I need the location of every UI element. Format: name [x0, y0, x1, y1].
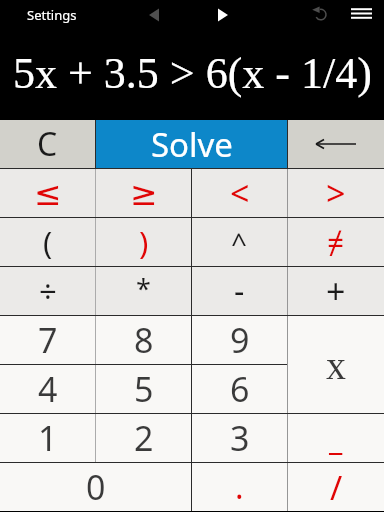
button[interactable]: 2	[96, 414, 191, 462]
button[interactable]: ^	[192, 218, 287, 266]
button[interactable]: 4	[0, 365, 95, 413]
staticText: /	[330, 465, 343, 510]
staticText: 6	[230, 366, 250, 412]
staticText: 1	[38, 415, 58, 461]
button[interactable]: _	[288, 414, 384, 462]
button[interactable]: 3	[192, 414, 287, 462]
button[interactable]: (	[0, 218, 95, 266]
button[interactable]: )	[96, 218, 191, 266]
button[interactable]	[140, 1, 168, 29]
button[interactable]	[288, 120, 384, 168]
button[interactable]: -	[192, 267, 287, 315]
staticText: 8	[134, 317, 154, 363]
staticText: 4	[38, 366, 58, 412]
staticText: (	[43, 221, 53, 263]
staticText: 5x + 3.5 > 6(x - 1/4)	[13, 49, 372, 98]
button[interactable]: 8	[96, 316, 191, 364]
button[interactable]: Settings	[27, 6, 77, 24]
button[interactable]: 6	[192, 365, 287, 413]
button[interactable]: 5	[96, 365, 191, 413]
staticText: ≤	[34, 174, 62, 212]
staticText: ≠	[327, 222, 345, 263]
staticText: -	[234, 269, 245, 313]
staticText: x	[326, 343, 346, 387]
button[interactable]: +	[288, 267, 384, 315]
button[interactable]	[347, 0, 377, 30]
button[interactable]: >	[288, 169, 384, 217]
staticText: )	[139, 221, 149, 263]
staticText: ^	[231, 223, 248, 261]
staticText: .	[235, 465, 244, 509]
staticText: 9	[230, 317, 250, 363]
button[interactable]	[210, 1, 238, 29]
staticText: <	[230, 170, 250, 216]
button[interactable]: .	[192, 463, 287, 511]
staticText: *	[136, 270, 151, 307]
button[interactable]: x	[288, 316, 384, 413]
button[interactable]: *	[96, 267, 191, 315]
staticText: 5	[134, 366, 154, 412]
button[interactable]: ≠	[288, 218, 384, 266]
staticText: 2	[134, 415, 154, 461]
staticText: Solve	[151, 122, 233, 167]
button[interactable]: 0	[0, 463, 191, 511]
button[interactable]: Solve	[96, 120, 287, 168]
staticText: +	[326, 268, 346, 314]
staticText: 3	[230, 415, 250, 461]
staticText: >	[326, 170, 346, 216]
button[interactable]: C	[0, 120, 95, 168]
staticText: 0	[86, 464, 106, 510]
button[interactable]: /	[288, 463, 384, 511]
staticText: C	[37, 122, 58, 166]
staticText: _	[329, 418, 343, 459]
button[interactable]: 1	[0, 414, 95, 462]
button[interactable]: 7	[0, 316, 95, 364]
staticText: 7	[38, 317, 58, 363]
button[interactable]: ÷	[0, 267, 95, 315]
button[interactable]	[306, 1, 334, 29]
button[interactable]: <	[192, 169, 287, 217]
staticText: ÷	[39, 270, 57, 312]
button[interactable]: ≥	[96, 169, 191, 217]
button[interactable]: ≤	[0, 169, 95, 217]
button[interactable]: 9	[192, 316, 287, 364]
staticText: ≥	[130, 174, 158, 212]
